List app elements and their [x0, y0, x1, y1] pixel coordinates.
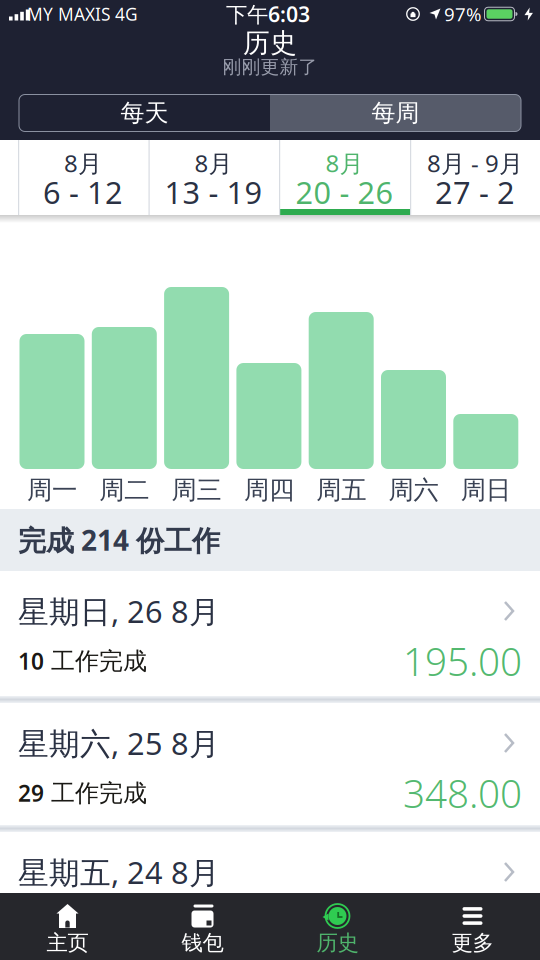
staticText: 主页 — [46, 930, 88, 956]
staticText: 星期六, 25 8月 — [18, 723, 220, 763]
button[interactable]: 8月 - 9月 — [410, 140, 540, 215]
button[interactable]: 8月 — [148, 140, 278, 215]
staticText: 历史 — [316, 930, 358, 956]
staticText: 10 工作完成 — [18, 646, 147, 676]
staticText: 钱包 — [181, 930, 223, 956]
staticText: MY MAXIS — [27, 2, 111, 25]
staticText: 8月 - 9月 — [427, 147, 523, 179]
staticText: 完成 214 份工作 — [18, 521, 220, 559]
staticText: 周日 — [461, 474, 511, 505]
button[interactable]: 更多 — [405, 893, 540, 960]
button[interactable]: 每周 — [270, 94, 521, 131]
staticText: 8月 — [325, 147, 363, 179]
button[interactable]: 星期五, 24 8月 — [0, 832, 540, 893]
staticText: 周六 — [388, 474, 438, 505]
button[interactable]: 8月 — [18, 140, 148, 215]
staticText: 周一 — [27, 474, 77, 505]
staticText: 下午6:03 — [226, 0, 310, 28]
button[interactable]: 钱包 — [135, 893, 270, 960]
staticText: 8月 — [64, 147, 102, 179]
staticText: 刚刚更新了 — [222, 55, 317, 78]
staticText: 周二 — [99, 474, 149, 505]
staticText: 6 - 12 — [43, 172, 123, 212]
staticText: 4G — [115, 2, 138, 25]
staticText: 周五 — [316, 474, 366, 505]
staticText: 348.00 — [403, 767, 522, 819]
staticText: 13 - 19 — [164, 172, 262, 212]
button[interactable]: 历史 — [270, 893, 405, 960]
staticText: 20 - 26 — [295, 172, 393, 212]
button[interactable]: 8月 — [279, 140, 410, 215]
button[interactable]: 每天 — [19, 94, 270, 131]
staticText: 27 - 2 — [435, 172, 515, 212]
staticText: 97% — [444, 2, 482, 26]
staticText: 历史 — [243, 27, 297, 59]
button[interactable]: 主页 — [0, 893, 135, 960]
staticText: 星期五, 24 8月 — [18, 852, 220, 892]
staticText: 更多 — [451, 930, 493, 956]
staticText: 周三 — [172, 474, 222, 505]
staticText: 29 工作完成 — [18, 778, 147, 808]
staticText: 8月 — [194, 147, 232, 179]
button[interactable]: 星期日, 26 8月 — [0, 571, 540, 696]
button[interactable]: 星期六, 25 8月 — [0, 703, 540, 825]
staticText: 每周 — [371, 98, 419, 128]
staticText: 星期日, 26 8月 — [18, 591, 220, 631]
staticText: 195.00 — [403, 635, 522, 687]
staticText: 周四 — [244, 474, 294, 505]
staticText: 每天 — [120, 98, 168, 128]
